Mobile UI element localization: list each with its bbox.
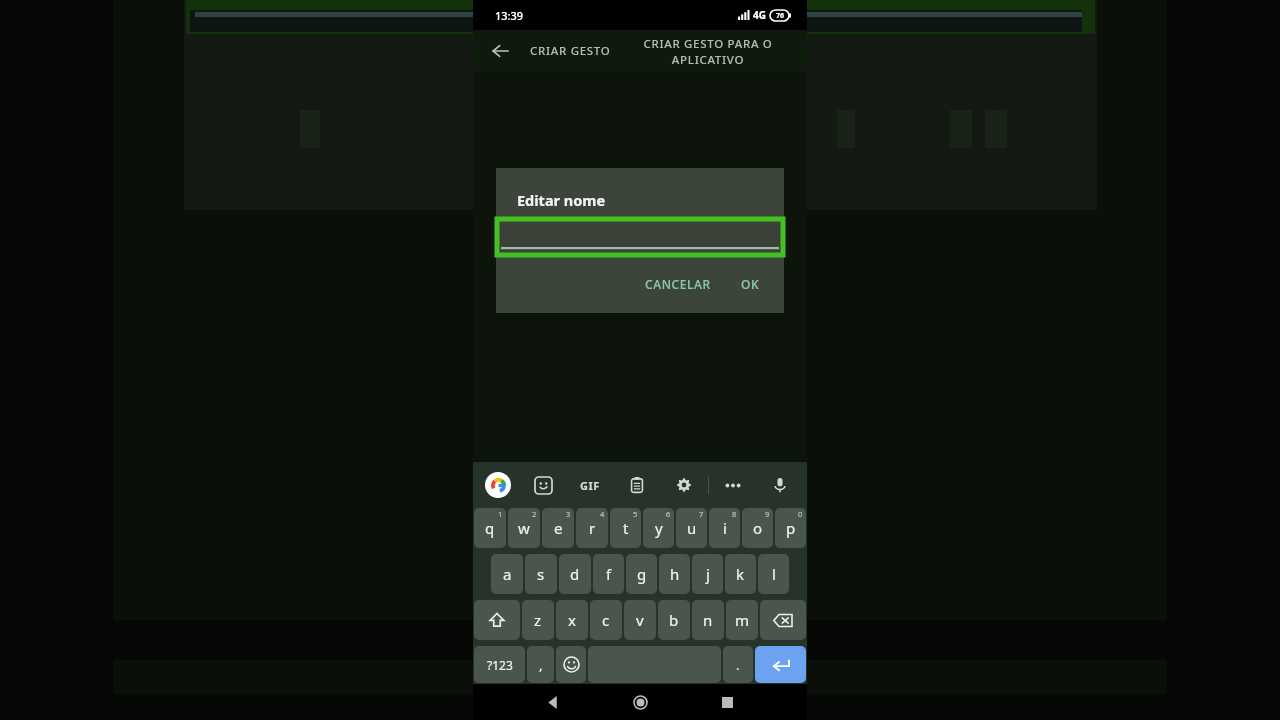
staticText: ?123 xyxy=(487,657,513,673)
staticText: y xyxy=(655,518,663,538)
button[interactable]: CRIAR GESTO xyxy=(524,37,617,65)
staticText: i xyxy=(723,518,727,538)
staticText: d xyxy=(570,564,580,584)
staticText: 0 xyxy=(798,509,803,519)
button[interactable]: r xyxy=(576,508,608,548)
staticText: f xyxy=(606,564,612,584)
button[interactable]: Voice input xyxy=(765,470,795,500)
staticText: q xyxy=(485,518,495,538)
button[interactable]: u xyxy=(676,508,707,548)
staticText: l xyxy=(772,564,776,584)
staticText: s xyxy=(537,564,545,584)
button[interactable]: d xyxy=(559,554,591,594)
button[interactable]: g xyxy=(626,554,657,594)
button[interactable]: Backspace xyxy=(760,600,806,640)
button[interactable]: CRIAR GESTO PARA O APLICATIVO xyxy=(643,36,773,67)
button[interactable]: v xyxy=(624,600,656,640)
button[interactable]: Google xyxy=(485,472,511,498)
staticText: k xyxy=(736,564,745,584)
staticText: m xyxy=(735,610,750,630)
button[interactable]: p xyxy=(775,508,806,548)
button[interactable]: Stickers xyxy=(528,470,558,500)
staticText: c xyxy=(602,610,610,630)
staticText: o xyxy=(753,518,763,538)
staticText: 6 xyxy=(666,509,671,519)
staticText: 76 xyxy=(776,11,785,21)
staticText: g xyxy=(637,564,647,584)
button[interactable]: m xyxy=(726,600,758,640)
staticText: CANCELAR xyxy=(645,276,711,292)
button[interactable]: Back xyxy=(536,685,570,719)
button[interactable]: e xyxy=(542,508,574,548)
button[interactable] xyxy=(556,646,586,683)
button[interactable]: x xyxy=(556,600,588,640)
button[interactable]: t xyxy=(610,508,641,548)
button[interactable]: h xyxy=(659,554,690,594)
button[interactable]: z xyxy=(522,600,554,640)
button[interactable]: b xyxy=(658,600,690,640)
staticText: Editar nome xyxy=(517,190,606,210)
button[interactable]: c xyxy=(590,600,622,640)
button[interactable]: Enter xyxy=(755,646,806,683)
button[interactable]: i xyxy=(709,508,740,548)
staticText: , xyxy=(539,656,543,674)
staticText: x xyxy=(568,610,576,630)
staticText: w xyxy=(518,518,530,538)
button[interactable]: y xyxy=(643,508,674,548)
staticText: e xyxy=(554,518,563,538)
button[interactable]: Clipboard xyxy=(622,470,652,500)
button[interactable]: OK xyxy=(733,269,768,299)
button[interactable]: f xyxy=(593,554,624,594)
staticText: 13:39 xyxy=(495,8,524,23)
button[interactable]: CANCELAR xyxy=(637,269,719,299)
button[interactable]: Shift xyxy=(474,600,520,640)
button[interactable]: k xyxy=(725,554,756,594)
staticText: j xyxy=(706,564,710,584)
staticText: b xyxy=(669,610,679,630)
staticText: z xyxy=(534,610,542,630)
button[interactable]: q xyxy=(474,508,506,548)
staticText: 8 xyxy=(732,509,737,519)
staticText: r xyxy=(589,518,596,538)
staticText: p xyxy=(786,518,796,538)
staticText: v xyxy=(636,610,644,630)
button[interactable]: More xyxy=(718,470,748,500)
button[interactable]: n xyxy=(692,600,724,640)
button[interactable]: . xyxy=(723,646,753,683)
staticText: u xyxy=(687,518,697,538)
button[interactable]: Home xyxy=(623,685,657,719)
button[interactable]: ?123 xyxy=(474,646,525,683)
staticText: 4G xyxy=(753,8,766,22)
staticText: 4 xyxy=(600,509,605,519)
button[interactable]: Back xyxy=(483,34,517,68)
staticText: 9 xyxy=(765,509,770,519)
button[interactable]: , xyxy=(527,646,554,683)
staticText: 2 xyxy=(532,509,537,519)
staticText: GIF xyxy=(580,478,600,493)
staticText: OK xyxy=(741,276,760,292)
button[interactable]: s xyxy=(525,554,557,594)
staticText: 7 xyxy=(699,509,704,519)
staticText: h xyxy=(670,564,680,584)
button[interactable]: Settings xyxy=(669,470,699,500)
button[interactable]: Recents xyxy=(710,685,744,719)
staticText: n xyxy=(703,610,713,630)
button[interactable]: o xyxy=(742,508,773,548)
staticText: a xyxy=(503,564,512,584)
staticText: 1 xyxy=(498,509,503,519)
button[interactable]: w xyxy=(508,508,540,548)
button[interactable]: a xyxy=(491,554,523,594)
button[interactable]: j xyxy=(692,554,723,594)
button[interactable] xyxy=(497,219,783,255)
button[interactable]: l xyxy=(758,554,789,594)
button[interactable]: GIF xyxy=(575,470,605,500)
staticText: 5 xyxy=(633,509,638,519)
staticText: . xyxy=(736,656,740,674)
staticText: t xyxy=(623,518,629,538)
staticText: 3 xyxy=(566,509,571,519)
